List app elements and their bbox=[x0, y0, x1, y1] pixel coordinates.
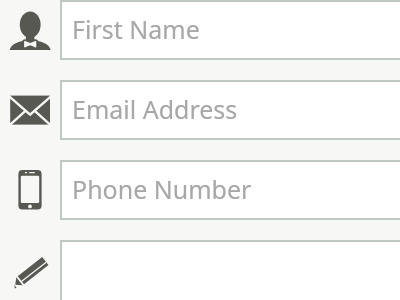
staticText: First Name bbox=[72, 12, 200, 46]
staticText: Phone Number bbox=[72, 172, 252, 206]
button[interactable]: Phone bbox=[0, 160, 60, 220]
button[interactable]: First Name bbox=[60, 0, 400, 60]
button[interactable]: Email Address bbox=[60, 80, 400, 140]
staticText: Email Address bbox=[72, 92, 238, 126]
button[interactable]: Notes bbox=[0, 240, 60, 300]
button[interactable]: Phone Number bbox=[60, 160, 400, 220]
button[interactable]: Email bbox=[0, 80, 60, 140]
button[interactable] bbox=[60, 240, 400, 300]
button[interactable]: Person bbox=[0, 0, 60, 60]
